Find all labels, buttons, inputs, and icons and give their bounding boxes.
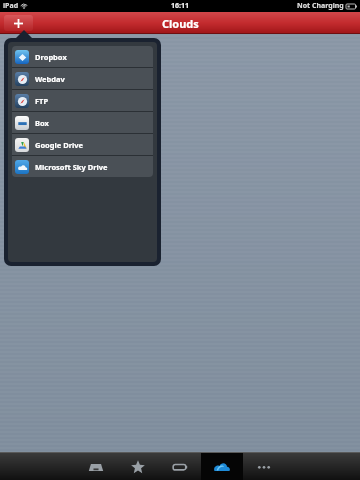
button[interactable]: More	[243, 453, 285, 480]
staticText: Webdav	[35, 74, 65, 84]
button[interactable]: Clouds	[201, 453, 243, 480]
staticText: Google Drive	[35, 140, 84, 150]
staticText: Box	[35, 118, 49, 128]
staticText: Microsoft Sky Drive	[35, 162, 108, 172]
button[interactable]: Microsoft Sky Drive	[12, 156, 153, 177]
button[interactable]: Cards	[159, 453, 201, 480]
button[interactable]: Dropbox	[12, 46, 153, 67]
button[interactable]: FTP	[12, 90, 153, 111]
staticText: iPad	[3, 1, 19, 11]
button[interactable]: Webdav	[12, 68, 153, 89]
staticText: Dropbox	[35, 52, 67, 62]
button[interactable]: Box	[12, 112, 153, 133]
staticText: FTP	[35, 96, 49, 106]
staticText: 16:11	[171, 1, 189, 11]
button[interactable]: Favorites	[117, 453, 159, 480]
button[interactable]: Google Drive	[12, 134, 153, 155]
button[interactable]: Library	[75, 453, 117, 480]
staticText: Clouds	[162, 16, 199, 31]
staticText: Not Charging	[297, 1, 344, 11]
button[interactable]: Add cloud	[4, 15, 33, 31]
